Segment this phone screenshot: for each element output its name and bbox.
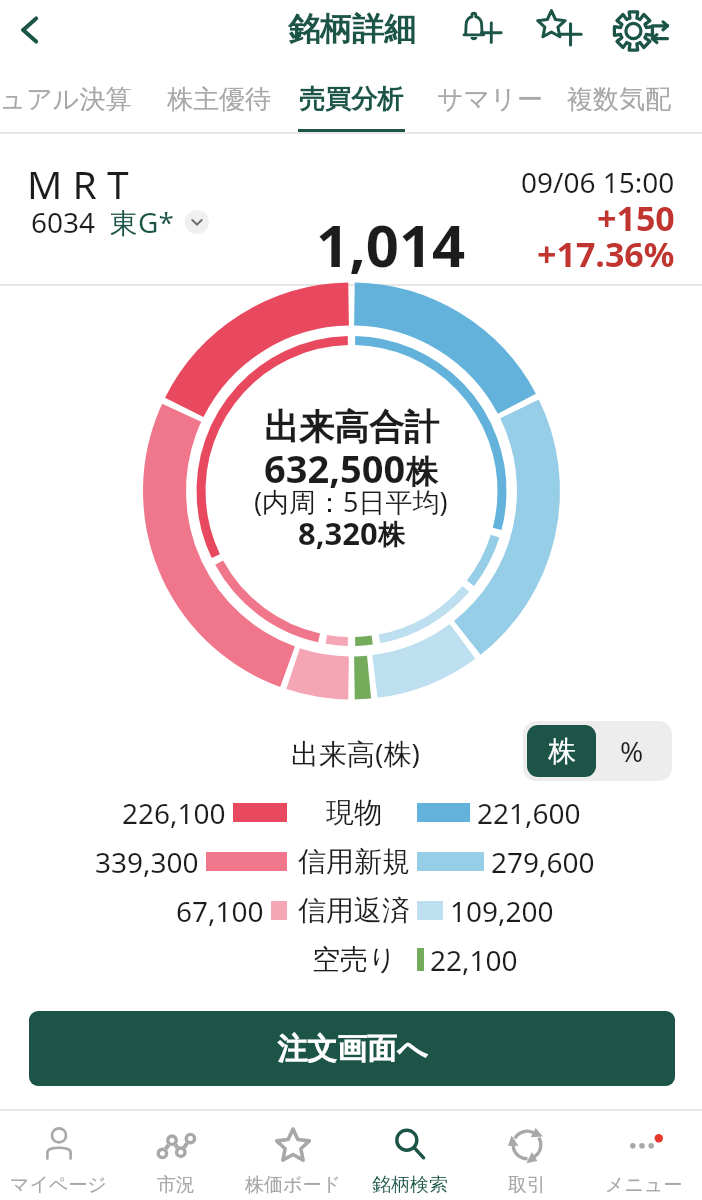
button[interactable]: Back <box>2 2 58 58</box>
staticText: 信用新規 <box>298 844 410 879</box>
staticText: 銘柄詳細 <box>288 9 416 49</box>
button[interactable]: 取引 <box>468 1111 585 1197</box>
button[interactable]: % <box>596 725 668 777</box>
button[interactable]: Expand market <box>185 210 209 234</box>
staticText: 注文画面へ <box>277 1030 428 1068</box>
staticText: 株 <box>548 734 576 769</box>
staticText: 221,600 <box>477 794 581 830</box>
button[interactable]: 注文画面へ <box>29 1011 675 1086</box>
staticText: サマリー <box>437 83 543 116</box>
button[interactable]: Add alert <box>451 1 507 57</box>
staticText: 632,500 <box>264 442 406 494</box>
staticText: 67,100 <box>176 892 264 928</box>
button[interactable]: 複数気配 <box>551 70 691 134</box>
button[interactable]: マイページ <box>0 1111 117 1197</box>
staticText: 6034 <box>31 203 96 241</box>
staticText: ジュアル決算 <box>0 83 132 116</box>
staticText: 09/06 15:00 <box>521 163 675 201</box>
staticText: 取引 <box>508 1173 546 1197</box>
staticText: 株 <box>406 452 438 492</box>
button[interactable]: 市況 <box>117 1111 234 1197</box>
staticText: 109,200 <box>450 892 554 928</box>
button[interactable]: Settings <box>606 1 664 59</box>
staticText: 226,100 <box>122 794 226 830</box>
staticText: 市況 <box>157 1173 195 1197</box>
button[interactable]: 株価ボード <box>234 1111 351 1197</box>
button[interactable]: 銘柄検索 <box>351 1111 468 1197</box>
staticText: 8,320 <box>298 512 378 554</box>
staticText: 複数気配 <box>567 83 671 116</box>
staticText: 信用返済 <box>298 893 410 928</box>
staticText: 出来高合計 <box>264 405 439 449</box>
staticText: +17.36% <box>537 231 675 277</box>
staticText: 株 <box>378 518 405 552</box>
staticText: 1,014 <box>316 205 466 284</box>
staticText: 銘柄検索 <box>372 1173 448 1197</box>
staticText: % <box>620 732 644 770</box>
staticText: 339,300 <box>95 843 199 879</box>
staticText: 株主優待 <box>167 83 271 116</box>
staticText: マイページ <box>10 1173 107 1197</box>
staticText: 株価ボード <box>245 1173 341 1197</box>
staticText: 279,600 <box>491 843 595 879</box>
staticText: 空売り <box>312 942 397 977</box>
button[interactable]: ジュアル決算 <box>0 70 153 134</box>
staticText: M R T <box>27 157 129 210</box>
button[interactable]: Add favorite <box>528 1 584 57</box>
staticText: 東G* <box>110 203 174 241</box>
button[interactable]: 株 <box>527 725 596 777</box>
staticText: 現物 <box>326 795 382 830</box>
staticText: 22,100 <box>430 941 518 977</box>
staticText: (内周：5日平均) <box>254 483 448 520</box>
staticText: メニュー <box>605 1173 683 1197</box>
button[interactable]: メニュー <box>585 1111 702 1197</box>
button[interactable]: サマリー <box>421 70 555 134</box>
button[interactable]: 売買分析 <box>283 70 420 134</box>
staticText: +150 <box>597 195 675 241</box>
button[interactable]: 株主優待 <box>151 70 288 134</box>
staticText: 売買分析 <box>299 83 403 116</box>
staticText: 出来高(株) <box>291 734 420 772</box>
